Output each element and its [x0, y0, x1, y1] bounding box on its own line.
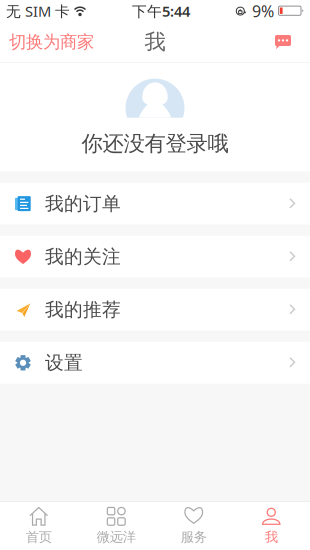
- staticText: 服务: [181, 529, 207, 545]
- staticText: 下午5:44: [132, 1, 190, 21]
- staticText: 我: [144, 29, 165, 55]
- button[interactable]: 首页: [0, 501, 77, 550]
- button[interactable]: 我的订单: [0, 183, 310, 225]
- staticText: 微远洋: [97, 529, 136, 545]
- staticText: 我的推荐: [45, 298, 121, 321]
- button[interactable]: 我的推荐: [0, 289, 310, 331]
- staticText: 你还没有登录哦: [81, 131, 228, 157]
- staticText: 我: [265, 529, 278, 545]
- button[interactable]: 设置: [0, 342, 310, 384]
- staticText: 设置: [45, 351, 83, 374]
- button[interactable]: 切换为商家: [0, 25, 103, 59]
- staticText: 我的订单: [45, 192, 121, 215]
- button[interactable]: 我的关注: [0, 236, 310, 278]
- button[interactable]: 消息: [263, 25, 310, 59]
- button[interactable]: 我: [232, 501, 310, 550]
- staticText: 无 SIM 卡: [6, 1, 70, 21]
- button[interactable]: 服务: [155, 501, 232, 550]
- staticText: 切换为商家: [9, 31, 94, 53]
- staticText: 9%: [252, 0, 274, 22]
- staticText: 首页: [26, 529, 52, 545]
- button[interactable]: 微远洋: [77, 501, 155, 550]
- staticText: 我的关注: [45, 245, 121, 268]
